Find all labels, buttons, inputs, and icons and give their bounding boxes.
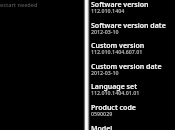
staticText: Model: [91, 124, 113, 130]
button[interactable]: Product code: [91, 103, 175, 124]
staticText: 112.010.1404.01.01: [91, 89, 140, 96]
staticText: estart needed: [0, 1, 38, 8]
staticText: 2012-03-10: [91, 28, 119, 35]
button[interactable]: Language set: [91, 82, 175, 103]
staticText: 112.010.1404.607.01: [91, 48, 143, 55]
staticText: Language set: [91, 82, 138, 92]
button[interactable]: Software version date: [91, 21, 175, 42]
button[interactable]: Custom version: [91, 41, 175, 62]
button[interactable]: Model: [91, 124, 175, 130]
staticText: Custom version: [91, 41, 145, 51]
staticText: 0590029: [91, 110, 113, 117]
staticText: 2012-03-10: [91, 69, 119, 76]
staticText: Custom version date: [91, 62, 162, 72]
staticText: Product code: [91, 103, 136, 113]
staticText: Software version: [91, 0, 149, 10]
button[interactable]: Software version: [91, 0, 175, 21]
button[interactable]: Custom version date: [91, 62, 175, 83]
staticText: Software version date: [91, 21, 166, 31]
staticText: 112.010.1404: [91, 7, 125, 14]
